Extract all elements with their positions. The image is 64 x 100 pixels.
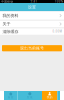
staticText: 关于 [2,21,10,26]
button[interactable]: 关于 [0,21,64,27]
staticText: 中国移动 [1,0,13,3]
button[interactable]: 发现 [18,91,42,100]
staticText: 我的资料 [2,13,18,18]
staticText: 0.00M [53,30,62,33]
button[interactable]: 首页 [4,91,18,100]
staticText: 我的 [47,96,53,99]
staticText: 清除缓存 [2,29,18,34]
staticText: 100% [55,0,63,3]
staticText: 发现 [27,96,33,99]
staticText: 退出当前账号 [20,46,44,51]
button[interactable]: 清除缓存 [0,28,64,35]
button[interactable]: 我的 [42,91,57,100]
button[interactable]: 退出当前账号 [2,45,62,51]
staticText: 首页 [8,96,14,99]
button[interactable]: 我的资料 [0,12,64,20]
staticText: 设置 [28,5,36,10]
staticText: 9:41 [30,0,37,3]
